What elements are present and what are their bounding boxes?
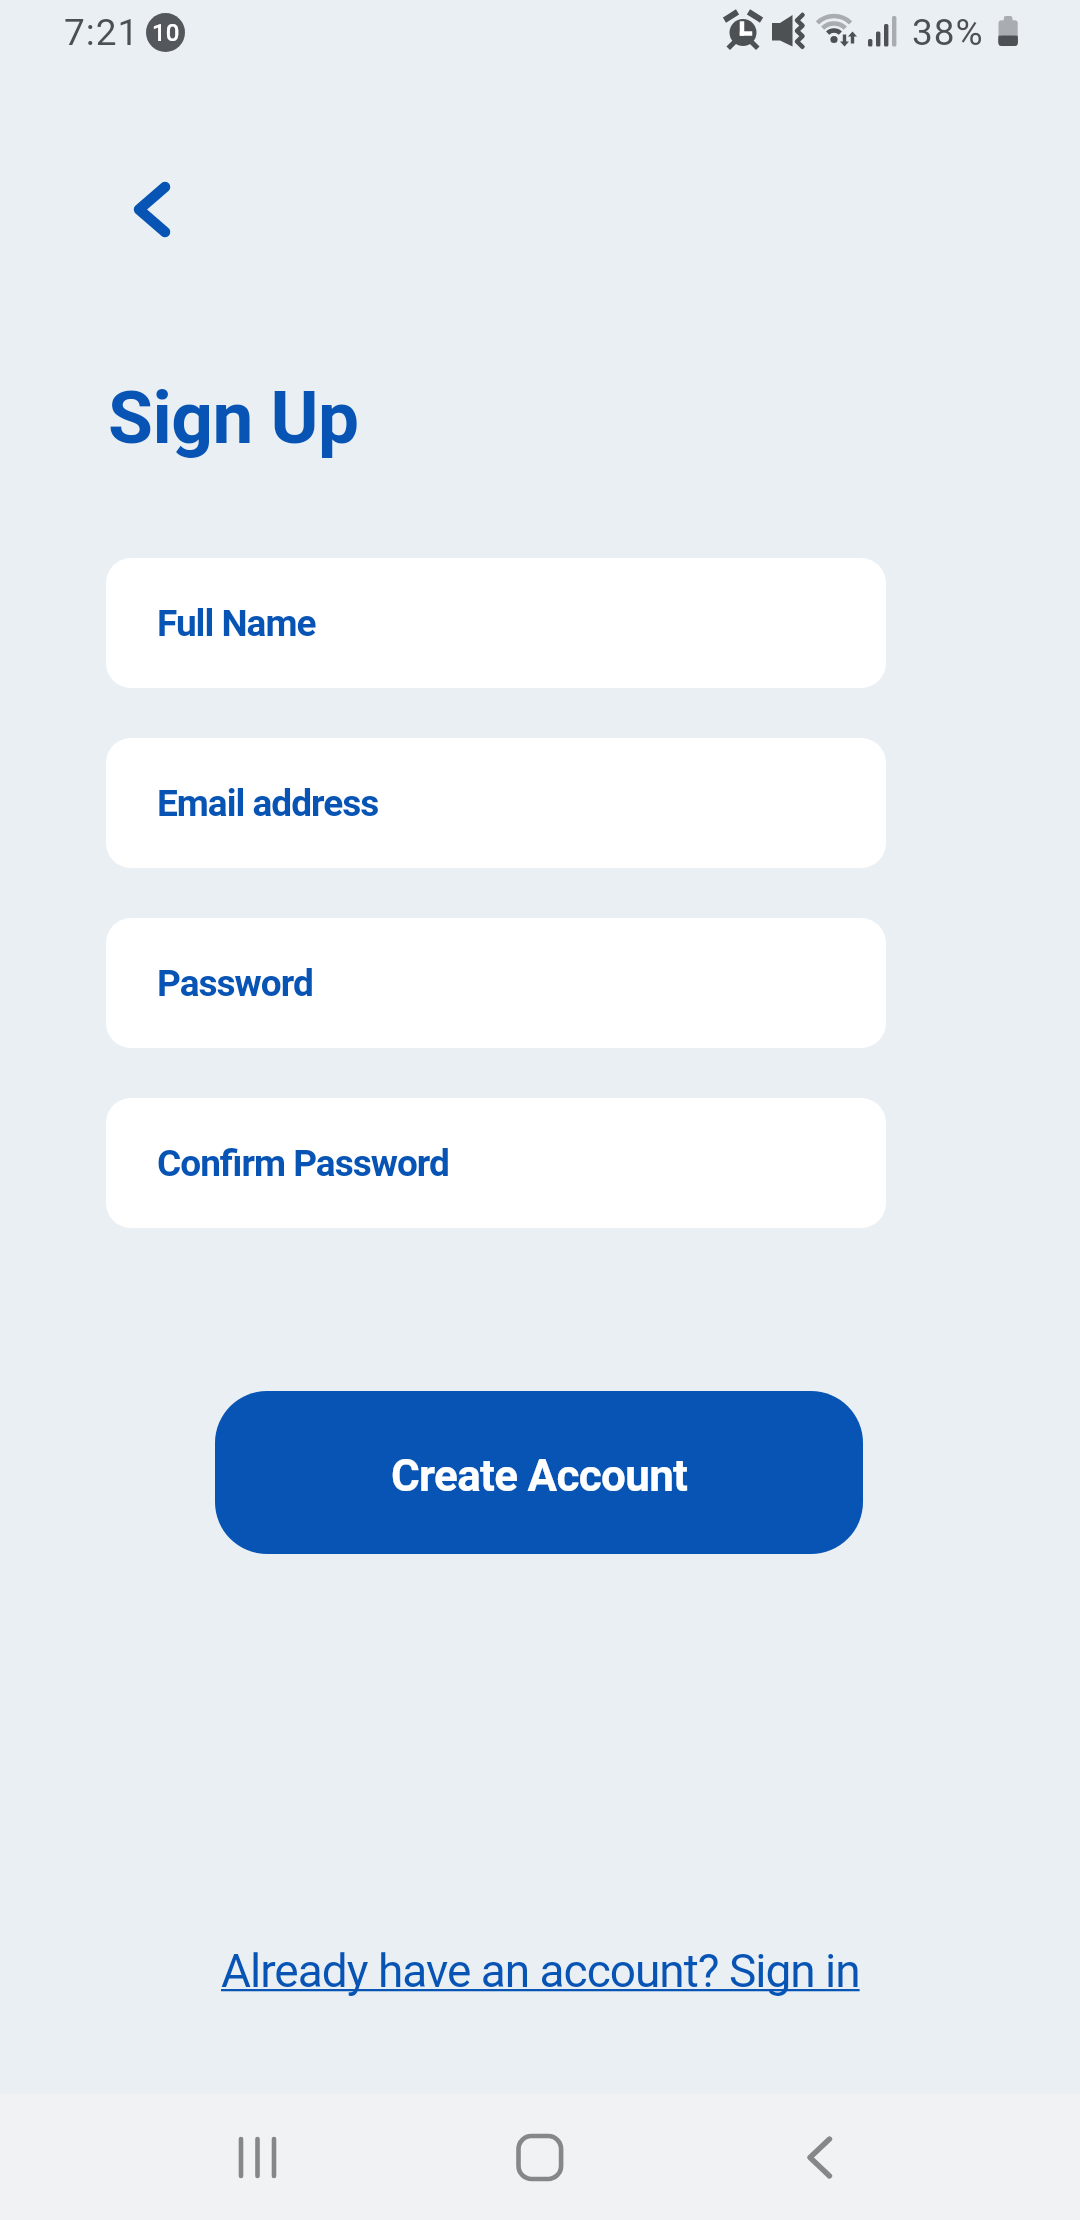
staticText: 38% [912, 11, 984, 54]
button[interactable]: Full Name [106, 558, 886, 688]
staticText: Full Name [157, 602, 316, 645]
staticText: Sign Up [108, 375, 359, 461]
button[interactable]: Create Account [215, 1391, 863, 1554]
button[interactable]: Password [106, 918, 886, 1048]
button[interactable] [755, 2116, 885, 2206]
button[interactable] [192, 2116, 322, 2206]
button[interactable] [95, 150, 205, 260]
staticText: Confirm Password [157, 1142, 449, 1185]
staticText: 10 [152, 19, 180, 47]
staticText: 7:21 [64, 11, 140, 54]
button[interactable]: Already have an account? Sign in [221, 1944, 860, 1998]
button[interactable]: Email address [106, 738, 886, 868]
button[interactable]: Confirm Password [106, 1098, 886, 1228]
staticText: Password [157, 962, 313, 1005]
button[interactable] [475, 2116, 605, 2206]
staticText: Email address [157, 782, 379, 825]
staticText: Create Account [391, 1450, 688, 1502]
